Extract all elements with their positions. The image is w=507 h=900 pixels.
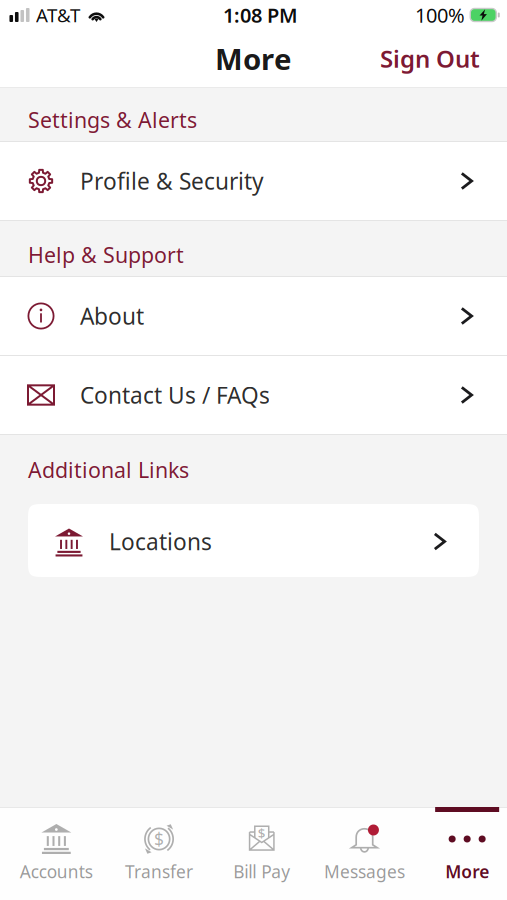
staticText: Contact Us / FAQs — [80, 380, 270, 410]
staticText: Profile & Security — [80, 166, 264, 196]
staticText: Accounts — [20, 860, 93, 883]
staticText: More — [215, 39, 292, 78]
button[interactable]: Locations — [28, 504, 479, 577]
button[interactable]: Messages — [313, 807, 416, 900]
staticText: Transfer — [125, 860, 193, 883]
button[interactable]: About — [0, 277, 507, 356]
button[interactable]: Sign Out — [366, 34, 494, 83]
button[interactable]: More — [416, 807, 507, 900]
button[interactable]: Accounts — [5, 807, 108, 900]
staticText: Messages — [324, 860, 405, 883]
staticText: AT&T — [36, 3, 80, 27]
button[interactable]: Profile & Security — [0, 142, 507, 221]
staticText: $ — [258, 824, 266, 842]
staticText: 100% — [415, 2, 465, 28]
staticText: Additional Links — [28, 456, 189, 484]
staticText: $ — [154, 827, 164, 850]
button[interactable]: Contact Us / FAQs — [0, 356, 507, 435]
staticText: Help & Support — [28, 241, 184, 269]
staticText: About — [80, 301, 144, 331]
button[interactable]: $ — [210, 807, 313, 900]
staticText: Locations — [109, 526, 212, 556]
staticText: Settings & Alerts — [28, 106, 197, 134]
staticText: Sign Out — [380, 43, 480, 74]
staticText: 1:08 PM — [223, 2, 298, 28]
staticText: More — [445, 860, 489, 883]
button[interactable]: $ — [108, 807, 210, 900]
staticText: Bill Pay — [233, 860, 290, 883]
